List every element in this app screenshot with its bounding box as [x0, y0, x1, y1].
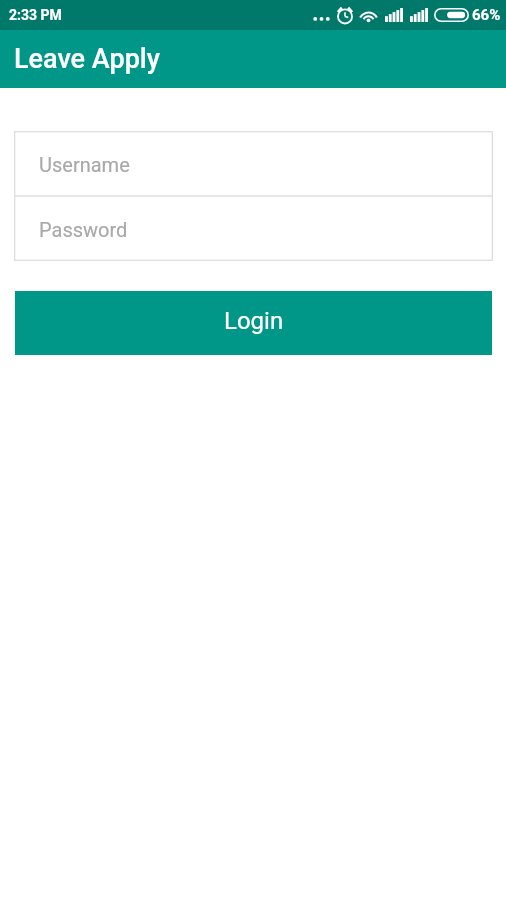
staticText: Leave Apply: [14, 43, 160, 75]
other: More: [313, 9, 330, 22]
button[interactable]: Password: [14, 196, 493, 261]
button[interactable]: Login: [15, 291, 492, 355]
other: Signal: [385, 8, 403, 22]
staticText: Username: [39, 153, 130, 176]
staticText: 66%: [472, 6, 501, 24]
staticText: 2:33 PM: [9, 7, 62, 23]
staticText: Password: [39, 218, 128, 241]
other: Alarm: [337, 6, 353, 24]
button[interactable]: Username: [14, 131, 493, 196]
other: Battery: [434, 8, 469, 22]
other: Signal: [410, 8, 428, 22]
other: Wi-Fi: [359, 8, 378, 22]
staticText: Login: [224, 307, 284, 335]
